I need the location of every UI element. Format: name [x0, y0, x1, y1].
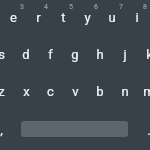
button[interactable]: g	[60, 42, 90, 66]
button[interactable]: .	[134, 118, 150, 142]
button[interactable]: r	[23, 5, 53, 29]
staticText: m	[143, 84, 150, 99]
button[interactable]: u	[97, 5, 127, 29]
staticText: 3	[20, 3, 24, 11]
button[interactable]: c	[35, 79, 65, 103]
button[interactable]: v	[60, 79, 90, 103]
staticText: h	[96, 47, 104, 62]
button[interactable]: j	[110, 42, 140, 66]
staticText: b	[96, 84, 104, 99]
button[interactable]: d	[11, 42, 41, 66]
button[interactable]: i	[122, 5, 150, 29]
staticText: z	[0, 84, 5, 99]
staticText: 7	[119, 3, 123, 11]
staticText: r	[36, 10, 41, 25]
staticText: y	[84, 10, 91, 25]
staticText: i	[135, 10, 139, 25]
staticText: v	[72, 84, 79, 99]
staticText: g	[71, 47, 79, 62]
button[interactable]: h	[85, 42, 115, 66]
button[interactable]: y	[72, 5, 102, 29]
staticText: k	[146, 47, 150, 62]
button[interactable]: x	[11, 79, 41, 103]
staticText: e	[10, 10, 17, 25]
button[interactable]: k	[134, 42, 150, 66]
staticText: d	[22, 47, 30, 62]
staticText: 8	[143, 3, 147, 11]
staticText: u	[108, 10, 116, 25]
button[interactable]: e	[0, 5, 28, 29]
staticText: f	[48, 47, 53, 62]
staticText: c	[47, 84, 54, 99]
button[interactable]: m	[134, 79, 150, 103]
button[interactable]: t	[48, 5, 78, 29]
staticText: 4	[44, 3, 48, 11]
button[interactable]: ,	[0, 117, 16, 141]
staticText: s	[0, 47, 5, 62]
staticText: j	[123, 47, 127, 62]
staticText: .	[147, 123, 150, 138]
button[interactable]: f	[35, 42, 65, 66]
button[interactable]: z	[0, 79, 16, 103]
staticText: x	[23, 84, 30, 99]
staticText: 6	[94, 3, 98, 11]
button[interactable]: b	[85, 79, 115, 103]
button[interactable]: n	[110, 79, 140, 103]
staticText: ,	[0, 122, 3, 137]
staticText: n	[121, 84, 129, 99]
staticText: 5	[69, 3, 73, 11]
staticText: t	[61, 10, 66, 25]
button[interactable]: s	[0, 42, 16, 66]
